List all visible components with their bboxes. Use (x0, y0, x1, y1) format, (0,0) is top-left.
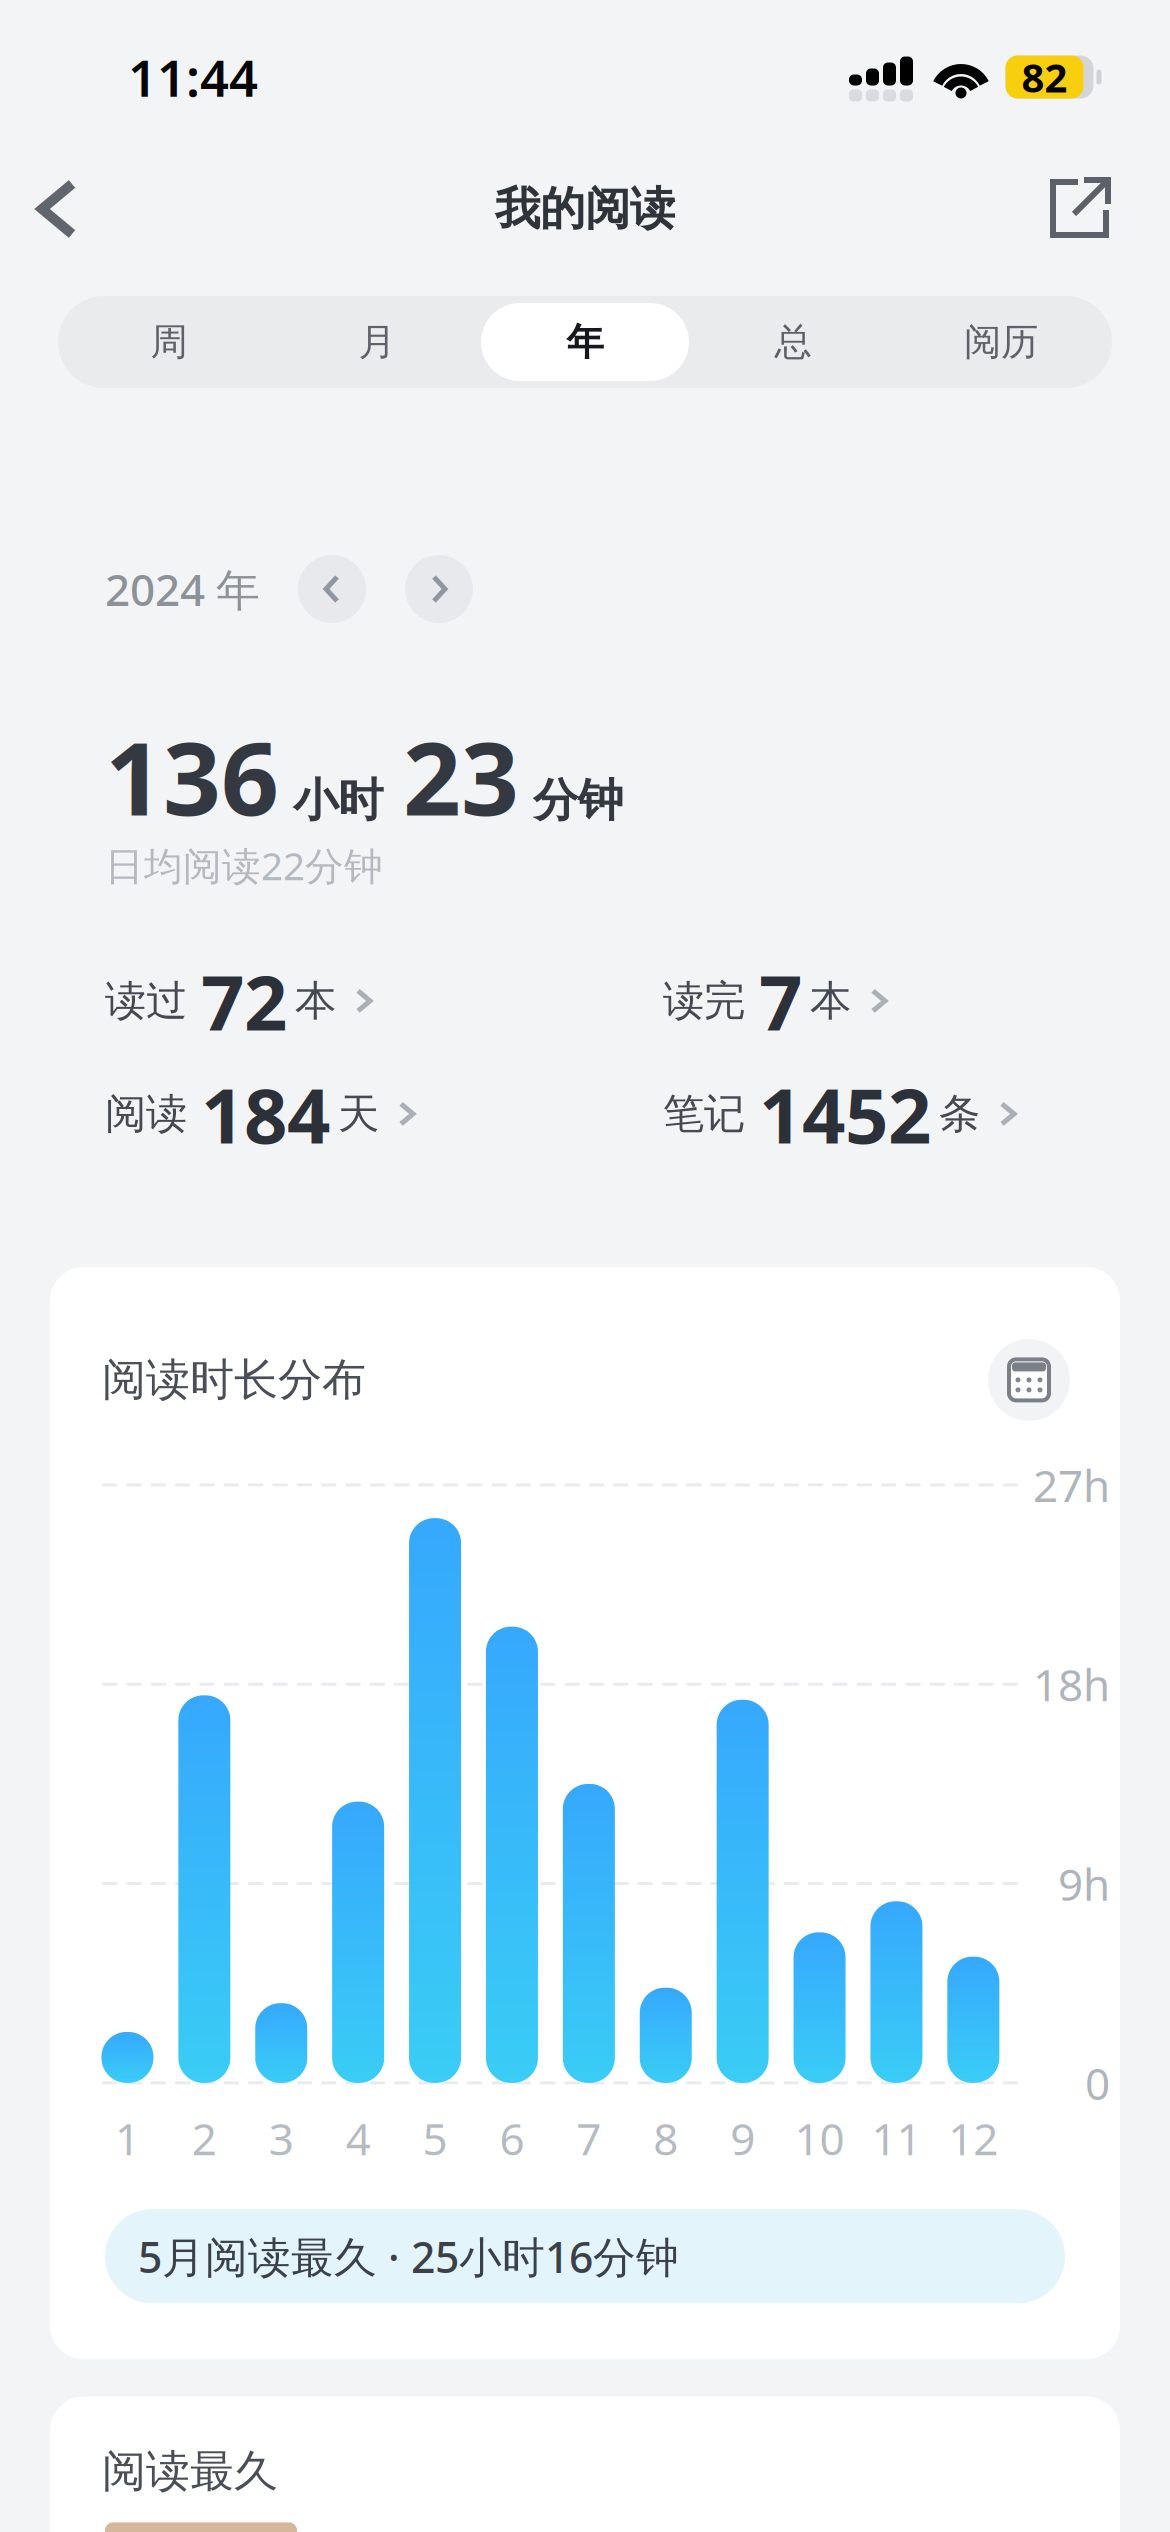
staticText: 笔记 (663, 1088, 745, 1139)
button[interactable]: 月 (273, 303, 481, 381)
staticText: 月 (358, 319, 395, 365)
staticText: 7 (759, 950, 802, 1051)
staticText: 10 (794, 2109, 844, 2167)
staticText: 2024 年 (105, 560, 260, 618)
staticText: 184 (201, 1063, 330, 1164)
staticText: 11:44 (128, 43, 258, 111)
staticText: 8 (653, 2109, 678, 2167)
button[interactable]: 周 (65, 303, 273, 381)
staticText: 阅读 (105, 1088, 187, 1139)
staticText: 1 (115, 2109, 140, 2167)
staticText: 72 (201, 950, 287, 1051)
staticText: 分钟 (533, 773, 623, 828)
staticText: 读过 (105, 975, 187, 1026)
staticText: 12 (948, 2109, 998, 2167)
staticText: 27h (1033, 1456, 1110, 1514)
staticText: 总 (774, 319, 811, 365)
button[interactable]: 读过 (105, 968, 378, 1034)
button[interactable]: Next year (405, 555, 473, 623)
staticText: 9 (730, 2109, 755, 2167)
staticText: 23 (403, 709, 519, 844)
button[interactable]: 读完 (663, 968, 893, 1034)
staticText: 5月阅读最久 · 25小时16分钟 (138, 2228, 679, 2285)
staticText: 0 (1085, 2054, 1110, 2112)
staticText: 18h (1033, 1655, 1110, 1713)
staticText: 阅读最久 (102, 2444, 278, 2498)
button[interactable]: 年 (481, 303, 689, 381)
staticText: 本 (810, 975, 851, 1026)
button[interactable]: 笔记 (663, 1081, 1022, 1147)
staticText: 我的阅读 (495, 181, 675, 237)
button[interactable]: 总 (689, 303, 897, 381)
staticText: 136 (105, 709, 279, 844)
staticText: 6 (499, 2109, 524, 2167)
staticText: 7 (576, 2109, 601, 2167)
button[interactable]: 阅读 (105, 1081, 421, 1147)
staticText: 日均阅读22分钟 (105, 840, 383, 891)
button[interactable]: Calendar (988, 1339, 1070, 1421)
staticText: 天 (338, 1088, 379, 1139)
staticText: 4 (346, 2109, 371, 2167)
button[interactable]: Back (0, 157, 110, 261)
staticText: 阅读时长分布 (102, 1353, 366, 1407)
staticText: 2 (192, 2109, 217, 2167)
staticText: 9h (1058, 1854, 1110, 1913)
staticText: 5 (423, 2109, 448, 2167)
staticText: 本 (295, 975, 336, 1026)
staticText: 年 (566, 319, 603, 365)
staticText: 阅历 (964, 319, 1038, 365)
button[interactable]: Previous year (298, 555, 366, 623)
staticText: 3 (269, 2109, 294, 2167)
staticText: 条 (939, 1088, 980, 1139)
button[interactable]: Share (1028, 157, 1138, 261)
button[interactable]: 阅历 (897, 303, 1105, 381)
staticText: 1452 (759, 1063, 931, 1164)
staticText: 周 (150, 319, 187, 365)
staticText: 82 (1021, 50, 1067, 103)
staticText: 小时 (293, 773, 383, 828)
staticText: 11 (871, 2109, 921, 2167)
staticText: 读完 (663, 975, 745, 1026)
